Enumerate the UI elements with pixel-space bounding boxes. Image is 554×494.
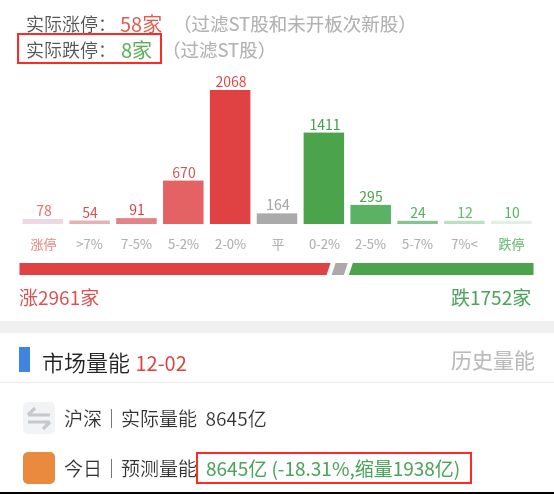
- staticText: （过滤ST股）: [162, 36, 277, 63]
- staticText: 8家: [121, 35, 153, 64]
- staticText: 今日｜预测量能: [64, 454, 198, 482]
- staticText: 2-5%: [355, 234, 386, 253]
- staticText: 7-5%: [121, 234, 152, 253]
- staticText: 市场量能: [42, 345, 131, 377]
- staticText: 58家: [120, 9, 163, 38]
- button[interactable]: 历史量能: [451, 344, 535, 374]
- staticText: 10: [504, 202, 520, 222]
- staticText: 78: [36, 200, 52, 220]
- staticText: 0-2%: [309, 234, 340, 253]
- staticText: 24: [410, 202, 426, 222]
- staticText: 2068: [215, 71, 247, 91]
- staticText: 涨停: [30, 234, 57, 253]
- button[interactable]: 切换: [23, 402, 55, 434]
- staticText: 平: [271, 234, 285, 253]
- staticText: 5-7%: [402, 234, 433, 253]
- staticText: 跌1752家: [451, 283, 532, 311]
- staticText: 12-02: [131, 348, 187, 377]
- staticText: （过滤ST股和未开板次新股）: [173, 10, 417, 37]
- staticText: 涨2961家: [19, 283, 100, 311]
- staticText: 实际涨停：: [26, 10, 116, 36]
- staticText: 295: [359, 186, 383, 206]
- staticText: 7%<: [451, 234, 478, 253]
- staticText: 8645亿 (-18.31%,缩量1938亿): [206, 454, 461, 482]
- staticText: 1411: [309, 114, 341, 134]
- staticText: 164: [266, 194, 290, 214]
- staticText: 2-0%: [215, 234, 246, 253]
- staticText: 12: [457, 202, 473, 222]
- staticText: >7%: [76, 234, 103, 253]
- staticText: 跌停: [498, 234, 525, 253]
- staticText: 沪深｜实际量能 8645亿: [64, 404, 267, 432]
- staticText: 54: [82, 202, 98, 222]
- staticText: 5-2%: [168, 234, 199, 253]
- staticText: 实际跌停：: [26, 36, 116, 62]
- staticText: 670: [172, 162, 196, 182]
- staticText: 91: [129, 199, 145, 219]
